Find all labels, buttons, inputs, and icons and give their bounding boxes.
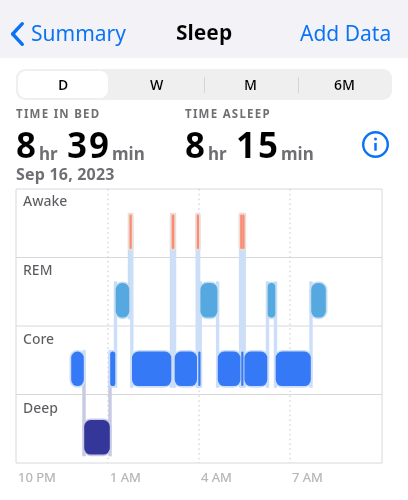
staticText: Add Data xyxy=(300,19,392,48)
staticText: Summary xyxy=(31,19,126,48)
staticText: min xyxy=(281,142,314,165)
staticText: 4 AM xyxy=(201,468,232,486)
staticText: 39 xyxy=(67,121,112,169)
staticText: Core xyxy=(23,329,55,348)
staticText: Sep 16, 2023 xyxy=(16,163,115,185)
staticText: Deep xyxy=(23,398,58,417)
staticText: Awake xyxy=(23,191,68,210)
button[interactable]: Information xyxy=(358,127,392,161)
staticText: TIME IN BED xyxy=(16,106,101,122)
button[interactable]: W xyxy=(110,69,204,100)
staticText: hr xyxy=(39,142,58,165)
button[interactable]: D xyxy=(16,69,110,100)
staticText: M xyxy=(244,75,258,94)
button[interactable]: M xyxy=(204,69,298,100)
staticText: 6M xyxy=(334,75,356,94)
staticText: Sleep xyxy=(176,18,233,47)
staticText: TIME ASLEEP xyxy=(185,106,271,122)
staticText: D xyxy=(58,75,69,94)
staticText: min xyxy=(112,142,145,165)
staticText: 15 xyxy=(236,121,281,169)
button[interactable]: Summary xyxy=(11,19,126,48)
button[interactable]: 6M xyxy=(298,69,392,100)
staticText: 10 PM xyxy=(18,468,56,486)
staticText: REM xyxy=(23,260,53,279)
staticText: 8 xyxy=(16,121,39,169)
staticText: 8 xyxy=(185,121,208,169)
staticText: 1 AM xyxy=(110,468,141,486)
staticText: W xyxy=(150,75,164,94)
staticText: 7 AM xyxy=(292,468,323,486)
staticText: hr xyxy=(208,142,227,165)
button[interactable]: Add Data xyxy=(300,19,392,48)
